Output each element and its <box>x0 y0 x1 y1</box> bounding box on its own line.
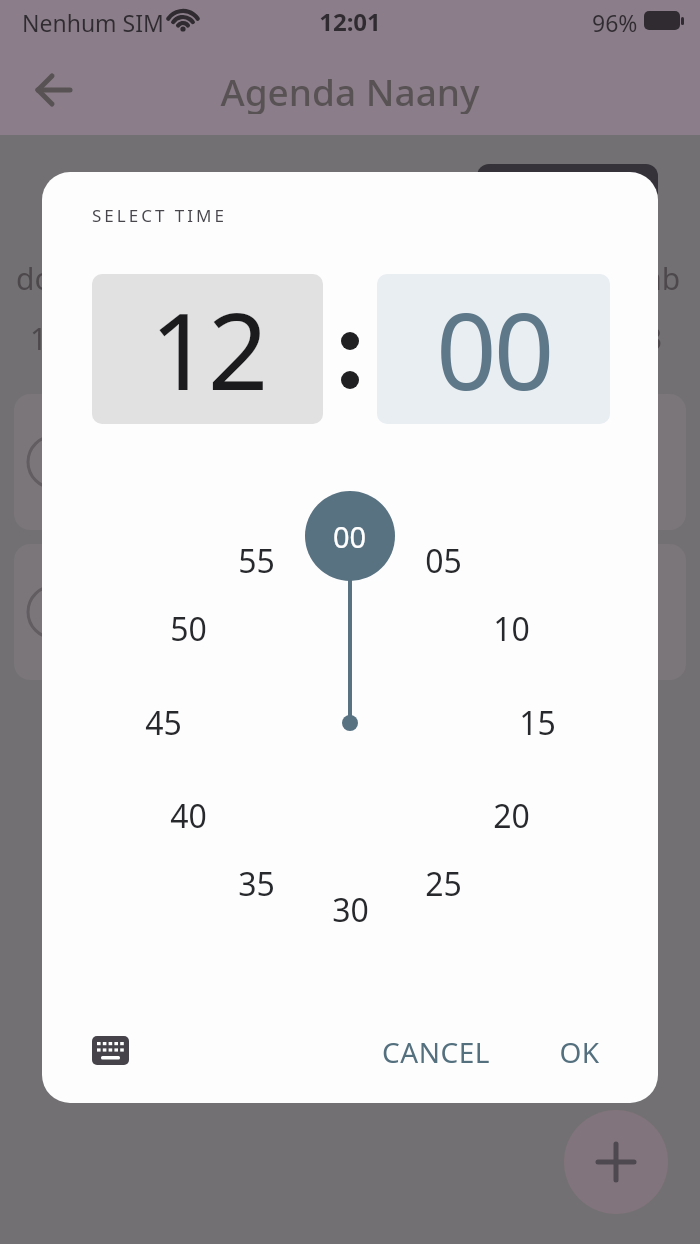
button[interactable]: OK <box>534 1030 624 1074</box>
button[interactable]: 55 <box>221 539 291 583</box>
staticText: Nenhum SIM <box>22 7 164 38</box>
staticText: Agenda Naany <box>220 66 480 114</box>
button[interactable]: 05 <box>408 539 478 583</box>
staticText: 20 <box>493 794 530 838</box>
staticText: 30 <box>332 888 369 932</box>
button[interactable]: 30 <box>315 888 385 932</box>
button[interactable]: 15 <box>502 701 572 745</box>
staticText: OK <box>559 1033 600 1071</box>
staticText: 96% <box>592 7 638 38</box>
button[interactable]: 10 <box>476 607 546 651</box>
staticText: 50 <box>170 607 207 651</box>
button[interactable]: 12 <box>92 274 323 424</box>
staticText: 00 <box>333 517 367 556</box>
staticText: 1 <box>30 318 48 359</box>
staticText: 05 <box>425 539 462 583</box>
staticText: 15 <box>519 701 556 745</box>
staticText: 12 <box>150 277 266 421</box>
staticText: 12:01 <box>319 5 381 37</box>
button[interactable]: 25 <box>408 862 478 906</box>
staticText: 55 <box>238 539 275 583</box>
staticText: 00 <box>436 277 552 421</box>
button[interactable] <box>564 1110 668 1214</box>
staticText: SELECT TIME <box>92 204 227 227</box>
staticText: do <box>16 258 53 299</box>
button[interactable]: 20 <box>476 794 546 838</box>
staticText: 3 <box>645 318 663 359</box>
button[interactable]: 00 <box>377 274 610 424</box>
button[interactable]: 50 <box>153 607 223 651</box>
staticText: 40 <box>170 794 207 838</box>
button[interactable]: 35 <box>221 862 291 906</box>
staticText: 35 <box>238 862 275 906</box>
button[interactable] <box>80 1024 140 1076</box>
staticText: áb <box>645 258 681 299</box>
button[interactable]: 00 <box>305 491 395 581</box>
staticText: 10 <box>493 607 530 651</box>
staticText: 25 <box>425 862 462 906</box>
button[interactable]: 45 <box>128 701 198 745</box>
button[interactable]: 40 <box>153 794 223 838</box>
staticText: CANCEL <box>382 1033 490 1071</box>
staticText: 45 <box>145 701 182 745</box>
button[interactable]: CANCEL <box>356 1030 516 1074</box>
button[interactable] <box>28 68 78 112</box>
